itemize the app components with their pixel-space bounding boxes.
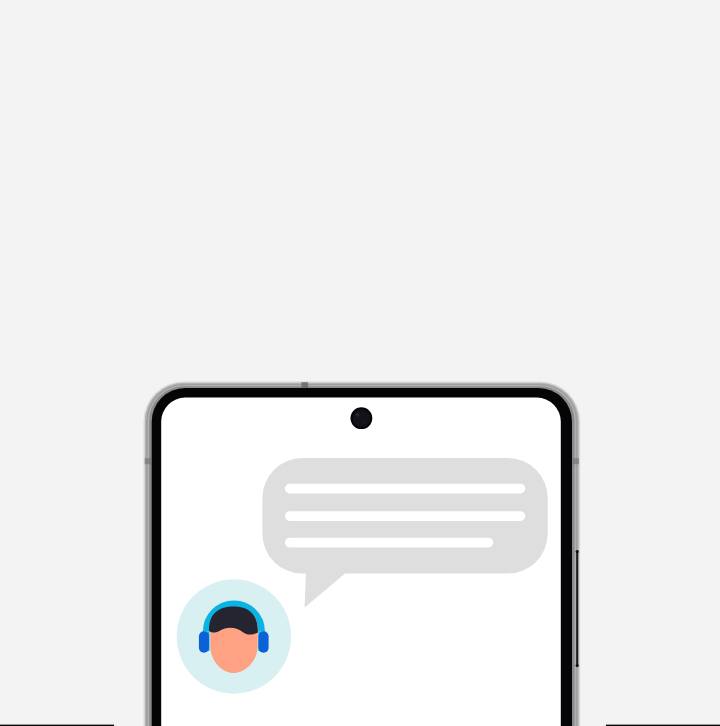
button[interactable]: Open conversation on phone — [144, 382, 581, 726]
button[interactable]: Message bubble — [262, 458, 548, 608]
button[interactable]: Contact avatar with headphones — [177, 579, 292, 694]
